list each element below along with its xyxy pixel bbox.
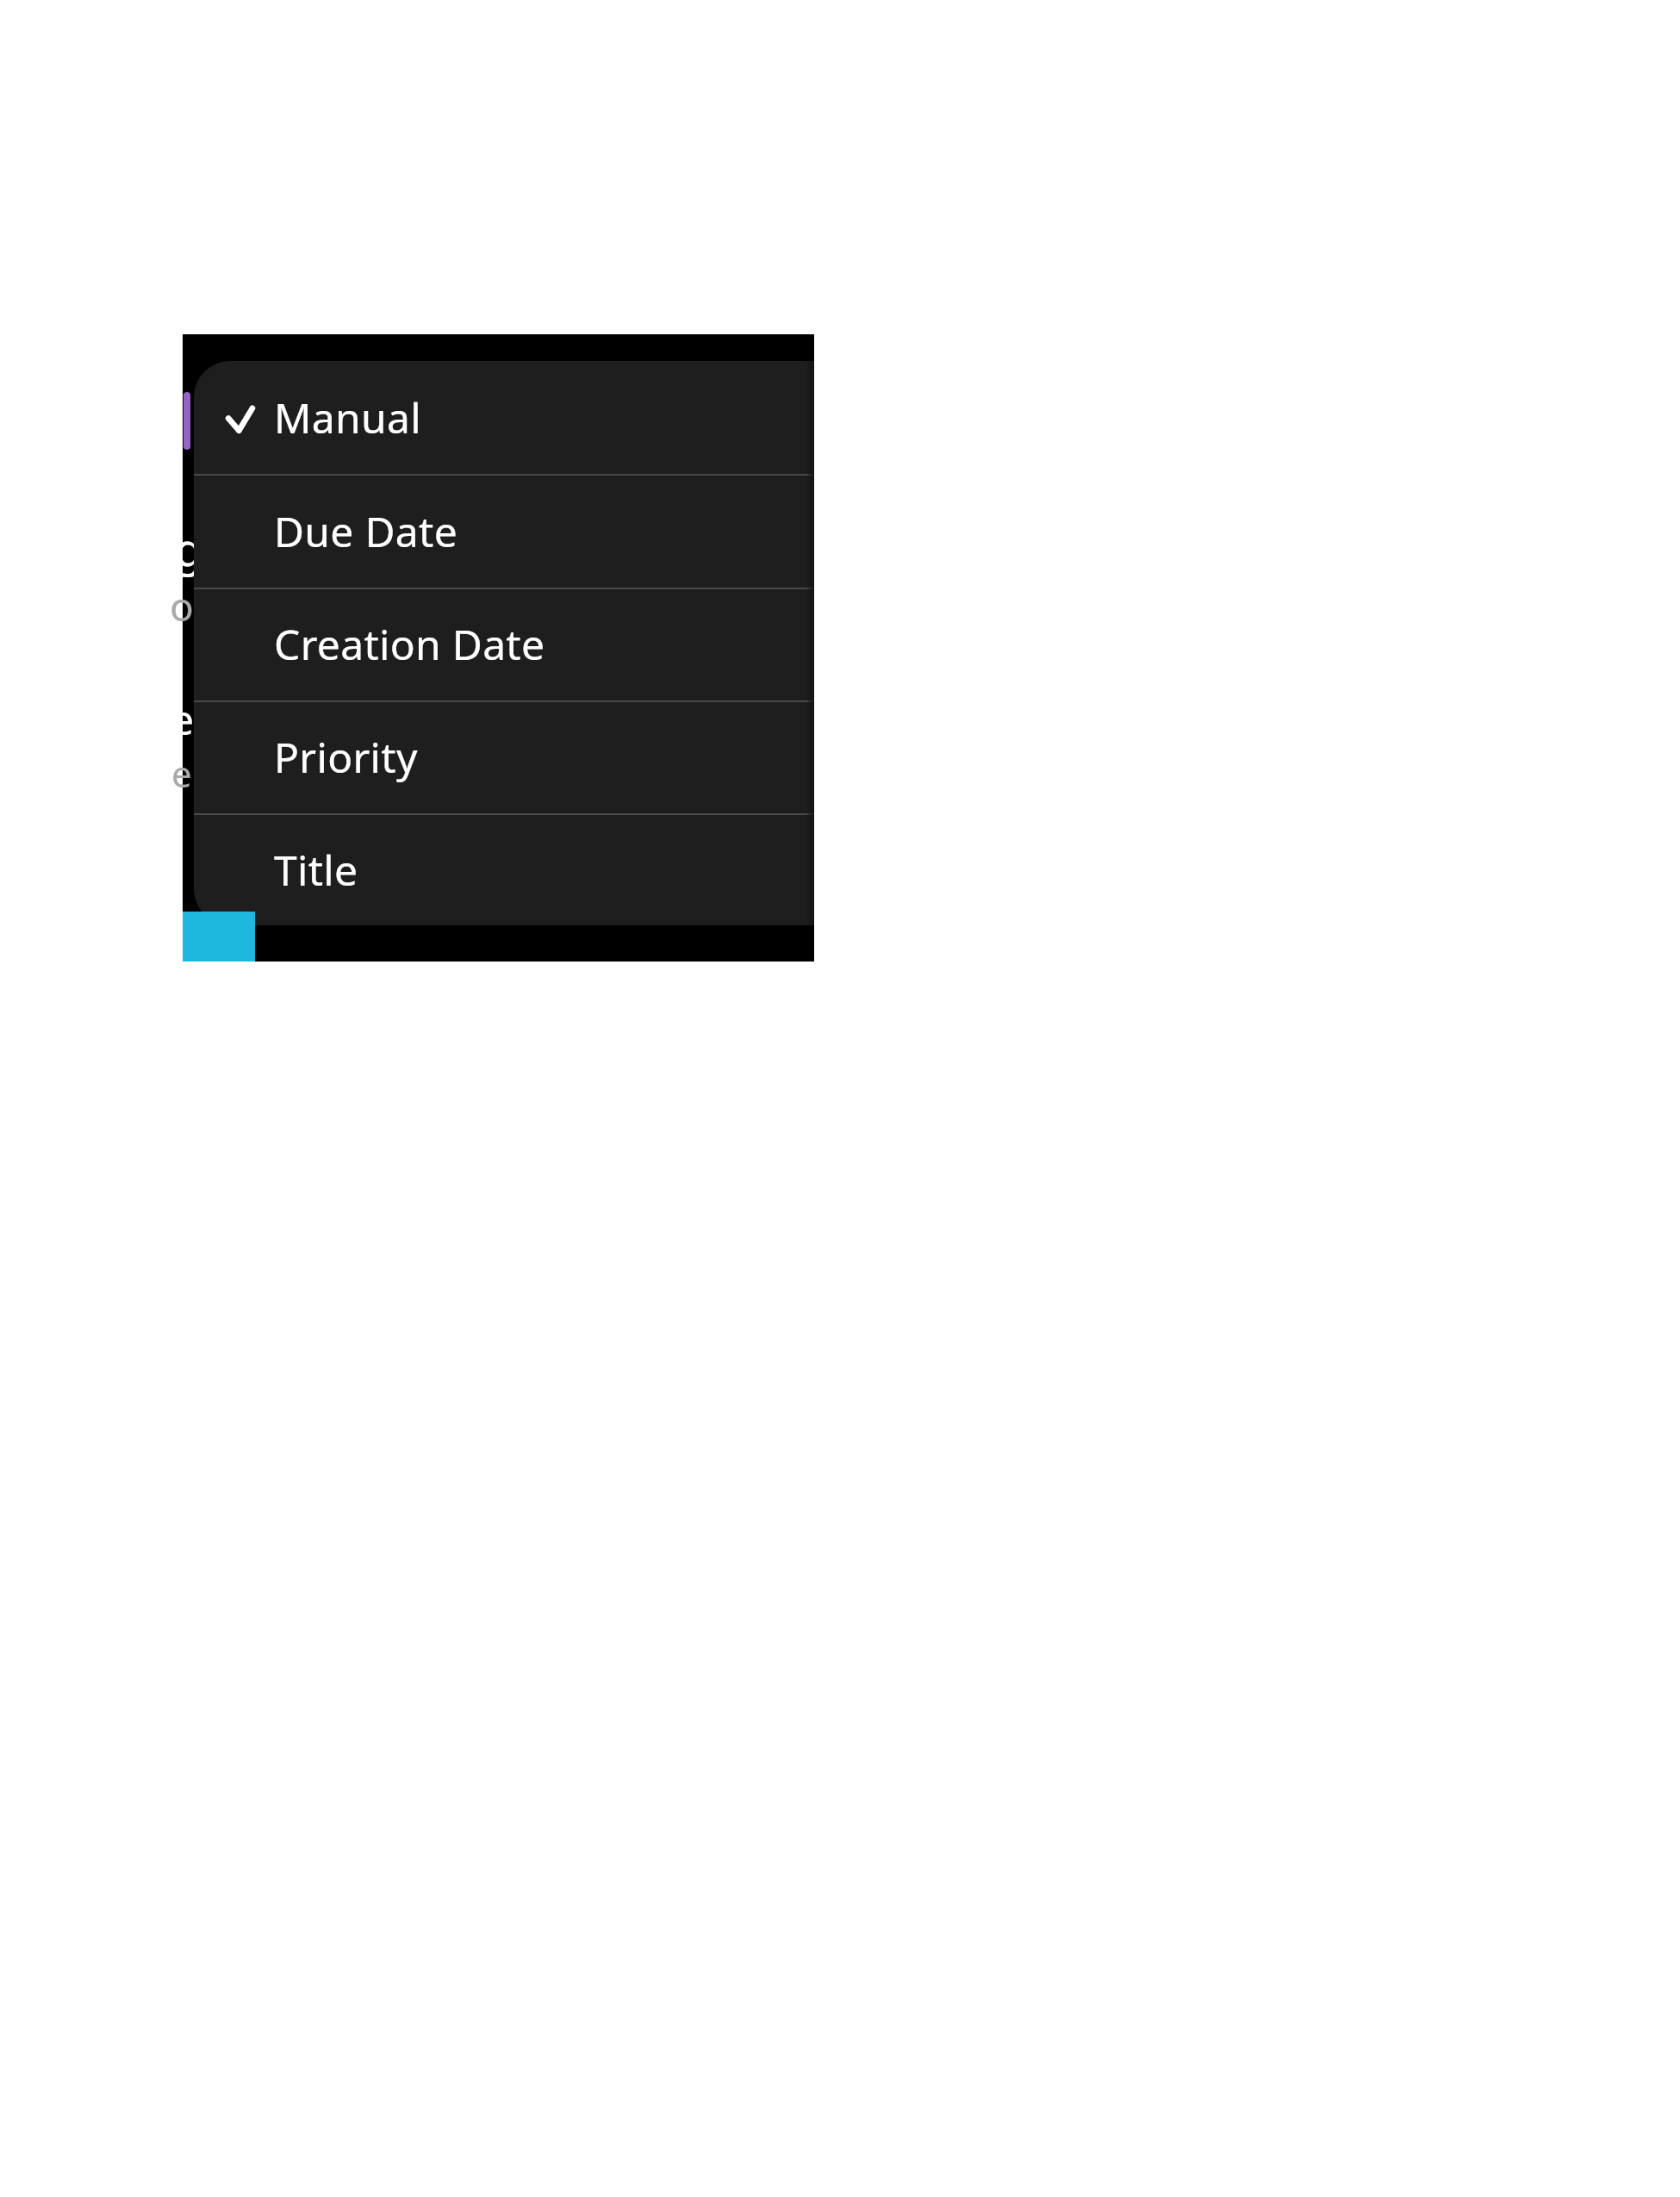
button[interactable]: Priority: [194, 700, 814, 813]
staticText: e: [171, 749, 192, 798]
staticText: Manual: [274, 389, 421, 445]
staticText: o: [170, 579, 194, 633]
staticText: Priority: [274, 729, 418, 785]
staticText: g: [175, 518, 202, 579]
staticText: Creation Date: [274, 616, 545, 672]
other: Selected: [221, 401, 255, 435]
button[interactable]: Creation Date: [194, 588, 814, 700]
button[interactable]: Due Date: [194, 474, 814, 588]
staticText: e: [171, 691, 195, 747]
staticText: Due Date: [274, 503, 458, 559]
button[interactable]: Title: [194, 813, 814, 925]
button[interactable]: Selected: [194, 361, 814, 474]
staticText: Title: [274, 842, 358, 898]
